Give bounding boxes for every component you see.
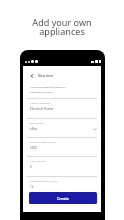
staticText: Create (57, 196, 69, 201)
button[interactable]: Name of appliance (30, 102, 97, 111)
staticText: New item (38, 73, 54, 77)
staticText: 2000 (30, 146, 97, 150)
staticText: 12 (30, 185, 97, 189)
staticText: appliance power (Watts) (30, 141, 56, 144)
staticText: eBay (30, 127, 93, 131)
staticText: Price source (30, 122, 44, 125)
staticText: Name your appliance and cost calculation… (30, 85, 66, 94)
staticText: 6 (30, 165, 97, 169)
button[interactable]: appliance power (Watts) (30, 141, 97, 150)
staticText: Hours per day (30, 160, 46, 163)
button[interactable]: Consumption (kWh / day) (30, 180, 97, 189)
button[interactable]: Create (29, 192, 97, 204)
button[interactable]: Back (28, 72, 36, 80)
button[interactable]: Hours per day (30, 160, 97, 169)
button[interactable]: Price source (30, 122, 97, 131)
staticText: Add your own appliances (0, 16, 124, 38)
staticText: Electrical Heater (30, 107, 97, 111)
staticText: Name of appliance (30, 102, 51, 105)
staticText: Consumption (kWh / day) (30, 180, 58, 183)
